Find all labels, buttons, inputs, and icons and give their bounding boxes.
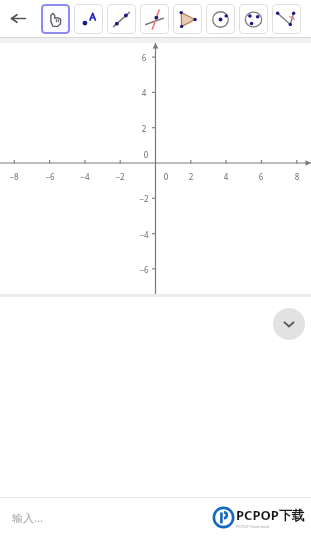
button[interactable]: Segment tool <box>107 4 136 34</box>
staticText: 输入... <box>12 510 43 525</box>
button[interactable]: Polygon tool <box>173 4 202 34</box>
staticText: 0 <box>158 171 174 182</box>
staticText: 4 <box>136 87 152 98</box>
staticText: −2 <box>112 171 128 182</box>
button[interactable]: Expand panel <box>273 308 305 340</box>
button[interactable]: Angle tool <box>272 4 301 34</box>
staticText: −4 <box>77 171 93 182</box>
button[interactable]: Move tool <box>41 4 70 34</box>
staticText: 6 <box>253 171 269 182</box>
staticText: 6 <box>136 52 152 63</box>
staticText: 2 <box>136 123 152 134</box>
staticText: −4 <box>136 229 152 240</box>
staticText: −6 <box>136 264 152 275</box>
staticText: PCPOP Download <box>236 524 269 529</box>
staticText: −8 <box>6 171 22 182</box>
staticText: −6 <box>42 171 58 182</box>
button[interactable]: Point tool <box>74 4 103 34</box>
staticText: PCPOP下载 <box>236 506 305 524</box>
staticText: 0 <box>138 149 154 160</box>
staticText: −2 <box>136 193 152 204</box>
button[interactable]: Circle tool <box>206 4 235 34</box>
button[interactable]: Conic tool <box>239 4 268 34</box>
staticText: 2 <box>183 171 199 182</box>
staticText: 4 <box>218 171 234 182</box>
button[interactable]: Back <box>0 0 37 37</box>
button[interactable]: Perpendicular line tool <box>140 4 169 34</box>
staticText: 8 <box>289 171 305 182</box>
button[interactable]: 输入... <box>0 498 311 536</box>
